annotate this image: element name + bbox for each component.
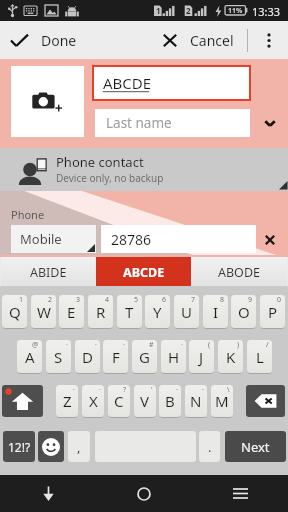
staticText: ·	[66, 340, 68, 350]
staticText: (	[208, 340, 211, 350]
staticText: Y	[153, 302, 162, 322]
staticText: ,	[77, 438, 81, 456]
staticText: 11%	[228, 6, 243, 16]
button[interactable]: Add photo	[11, 66, 84, 137]
staticText: 0	[277, 295, 282, 305]
staticText: 12!?	[8, 439, 31, 455]
button[interactable]: ,	[68, 431, 90, 462]
staticText: ?	[123, 385, 127, 395]
button[interactable]: Emoji	[38, 431, 64, 462]
button[interactable]: T	[117, 295, 142, 328]
staticText: ·	[181, 340, 183, 350]
button[interactable]: Phone contact	[0, 148, 288, 191]
staticText: J	[199, 347, 204, 367]
staticText: G	[139, 347, 150, 367]
button[interactable]: Mobile	[11, 225, 96, 253]
button[interactable]: H	[161, 340, 186, 373]
button[interactable]: .	[199, 431, 220, 462]
button[interactable]: Home	[96, 475, 192, 512]
staticText: F	[112, 347, 120, 367]
staticText: V	[140, 391, 150, 411]
button[interactable]: C	[108, 385, 130, 417]
staticText: )	[237, 340, 240, 350]
button[interactable]: P	[260, 295, 285, 328]
staticText: P	[268, 302, 278, 322]
staticText: ABIDE	[30, 264, 67, 281]
button[interactable]: Expand name	[258, 109, 282, 137]
staticText: ·	[99, 385, 101, 395]
staticText: ABCDE	[103, 73, 152, 93]
staticText: ABCDE	[123, 264, 165, 281]
button[interactable]: R	[88, 295, 113, 328]
staticText: L	[256, 347, 264, 367]
button[interactable]: Backspace	[246, 385, 285, 417]
button[interactable]: ABIDE	[1, 257, 96, 287]
button[interactable]: W	[31, 295, 56, 328]
button[interactable]: O	[231, 295, 256, 328]
button[interactable]: J	[189, 340, 214, 373]
staticText: ·	[73, 385, 75, 395]
button[interactable]: Cancel	[163, 21, 243, 59]
button[interactable]: Shift	[2, 385, 43, 417]
button[interactable]: Recent apps	[192, 475, 288, 512]
button[interactable]: Next	[225, 431, 286, 462]
button[interactable]: A	[17, 340, 42, 373]
staticText: ·	[176, 385, 178, 395]
staticText: 4	[105, 295, 110, 305]
button[interactable]: 28786	[101, 225, 256, 253]
button[interactable]: X	[82, 385, 104, 417]
button[interactable]: ABCDE	[93, 66, 250, 100]
button[interactable]: Done	[0, 21, 88, 59]
staticText: I	[213, 302, 219, 322]
staticText: 5	[134, 295, 139, 305]
staticText: M	[215, 391, 229, 411]
staticText: 13:33	[252, 4, 281, 19]
button[interactable]: Q	[2, 295, 27, 328]
button[interactable]: L	[247, 340, 272, 373]
button[interactable]: F	[103, 340, 128, 373]
button[interactable]: D	[75, 340, 100, 373]
staticText: @	[32, 340, 39, 350]
button[interactable]: N	[185, 385, 207, 417]
button[interactable]: E	[59, 295, 84, 328]
button[interactable]: Y	[145, 295, 170, 328]
staticText: Z	[63, 391, 72, 411]
staticText: S	[54, 347, 63, 367]
button[interactable]: G	[132, 340, 157, 373]
staticText: ·	[95, 340, 97, 350]
button[interactable]: U	[174, 295, 199, 328]
button[interactable]: ABODE	[191, 257, 287, 287]
staticText: '	[151, 385, 153, 395]
button[interactable]: S	[46, 340, 71, 373]
button[interactable]: Last name	[95, 109, 250, 137]
staticText: 1	[19, 295, 24, 305]
staticText: 9	[248, 295, 253, 305]
button[interactable]: Clear phone number	[258, 226, 282, 254]
button[interactable]: V	[134, 385, 156, 417]
staticText: O	[238, 302, 250, 322]
button[interactable]: ABCDE	[96, 257, 191, 287]
button[interactable]: More options	[250, 21, 288, 59]
staticText: U	[181, 302, 192, 322]
button[interactable]: Hide keyboard	[0, 475, 96, 512]
staticText: .	[208, 438, 212, 456]
staticText: K	[226, 347, 236, 367]
staticText: H	[168, 347, 180, 367]
staticText: Done	[41, 31, 77, 50]
staticText: Device only, no backup	[56, 171, 164, 185]
staticText: \	[227, 385, 230, 395]
button[interactable]: I	[203, 295, 228, 328]
button[interactable]: Z	[56, 385, 78, 417]
staticText: 2	[48, 295, 53, 305]
button[interactable]: M	[211, 385, 233, 417]
staticText: ·	[202, 385, 204, 395]
staticText: R	[96, 302, 106, 322]
staticText: Cancel	[190, 31, 234, 50]
staticText: A	[25, 347, 35, 367]
staticText: ABODE	[218, 264, 260, 281]
button[interactable]: Symbols	[3, 431, 35, 462]
staticText: Mobile	[20, 230, 62, 248]
button[interactable]: K	[218, 340, 243, 373]
button[interactable]: B	[159, 385, 181, 417]
